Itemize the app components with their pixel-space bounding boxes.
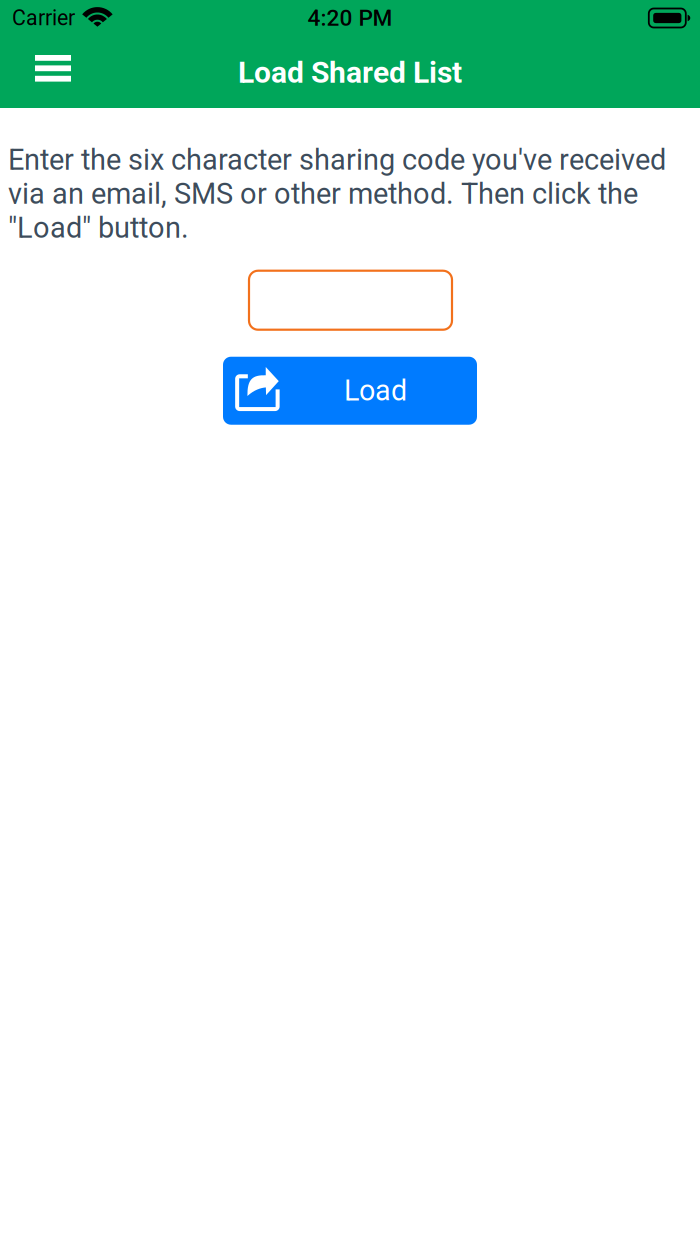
staticText: Load Shared List <box>238 55 462 90</box>
button[interactable]: Menu <box>0 36 89 100</box>
button[interactable]: Load <box>223 357 477 425</box>
button[interactable]: Sharing code <box>248 271 452 330</box>
staticText: Carrier <box>12 5 75 30</box>
staticText: Load <box>344 374 407 407</box>
staticText: 4:20 PM <box>307 5 392 31</box>
staticText: Enter the six character sharing code you… <box>8 143 666 245</box>
